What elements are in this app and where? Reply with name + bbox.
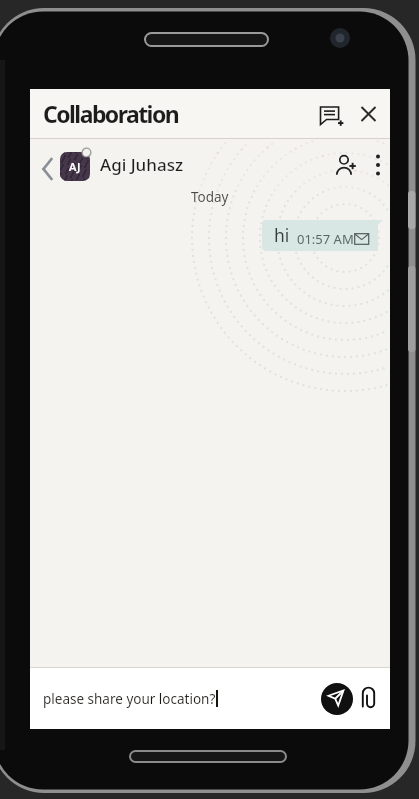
staticText: please share your location? [43,690,216,708]
button[interactable] [36,155,58,183]
button[interactable] [355,100,383,128]
staticText: hi [274,223,290,247]
button[interactable] [354,683,382,715]
staticText: Collaboration [43,98,179,129]
button[interactable]: AJ [60,152,90,181]
button[interactable] [321,683,353,715]
staticText: 01:57 AM [297,230,354,248]
button[interactable] [331,150,361,180]
button[interactable] [367,150,389,180]
staticText: Agi Juhasz [100,153,184,176]
staticText: AJ [69,159,81,174]
button[interactable] [314,103,345,129]
staticText: Today [191,188,229,206]
